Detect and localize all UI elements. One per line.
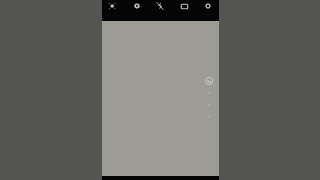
staticText: 1x xyxy=(197,79,221,85)
button[interactable]: Motion photo xyxy=(103,0,121,15)
button[interactable]: Aspect ratio xyxy=(175,0,193,15)
button[interactable]: Zoom level xyxy=(197,73,221,125)
button[interactable]: Settings xyxy=(199,0,217,15)
button[interactable]: Top shot xyxy=(128,0,146,15)
button[interactable]: Flash off xyxy=(151,0,169,15)
